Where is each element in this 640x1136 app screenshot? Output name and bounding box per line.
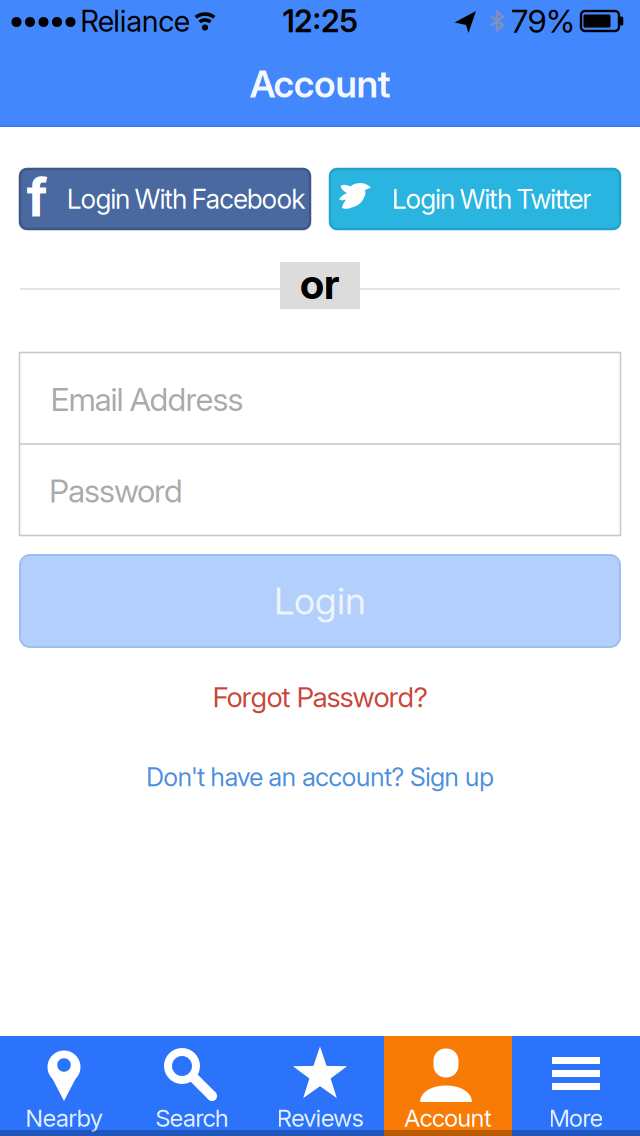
button[interactable]: Account <box>384 1036 512 1136</box>
staticText: Reliance <box>80 4 190 38</box>
staticText: More <box>549 1104 603 1132</box>
staticText: Login With Twitter <box>392 183 592 215</box>
button[interactable]: Email Address <box>20 354 619 443</box>
button[interactable]: Forgot Password? <box>212 680 427 713</box>
staticText: Don't have an account? Sign up <box>146 762 494 792</box>
staticText: Search <box>155 1104 229 1132</box>
button[interactable]: Login With Twitter <box>330 169 620 229</box>
button[interactable]: Reviews <box>256 1036 384 1136</box>
staticText: Password <box>49 472 183 510</box>
staticText: Login <box>274 579 366 623</box>
button[interactable]: More <box>512 1036 640 1136</box>
staticText: or <box>300 260 340 308</box>
staticText: 79% <box>511 2 575 40</box>
staticText: Login With Facebook <box>67 183 305 215</box>
staticText: f <box>26 165 47 228</box>
staticText: Email Address <box>50 380 243 418</box>
button[interactable]: Password <box>20 445 619 534</box>
button[interactable]: Nearby <box>0 1036 128 1136</box>
staticText: Forgot Password? <box>212 680 427 713</box>
button[interactable]: Search <box>128 1036 256 1136</box>
button[interactable]: f <box>20 169 310 229</box>
staticText: Account <box>249 62 391 106</box>
button[interactable]: Don't have an account? Sign up <box>146 762 494 792</box>
staticText: Account <box>404 1104 492 1132</box>
staticText: Reviews <box>277 1104 363 1132</box>
staticText: 12:25 <box>282 3 357 39</box>
staticText: Nearby <box>25 1104 103 1132</box>
button[interactable]: Login <box>20 555 620 647</box>
